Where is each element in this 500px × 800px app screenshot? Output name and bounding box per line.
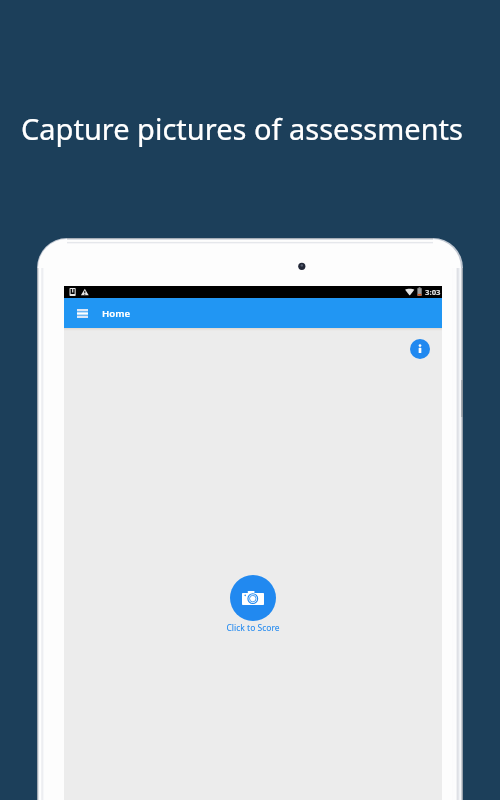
staticText: 3:03 — [425, 287, 441, 298]
staticText: Capture pictures of assessments — [21, 109, 463, 148]
button[interactable]: Open navigation drawer — [71, 302, 93, 324]
button[interactable]: Information — [410, 339, 430, 359]
staticText: Click to Score — [226, 622, 280, 634]
button[interactable]: Capture photo to score — [230, 575, 276, 621]
staticText: Home — [102, 307, 130, 320]
